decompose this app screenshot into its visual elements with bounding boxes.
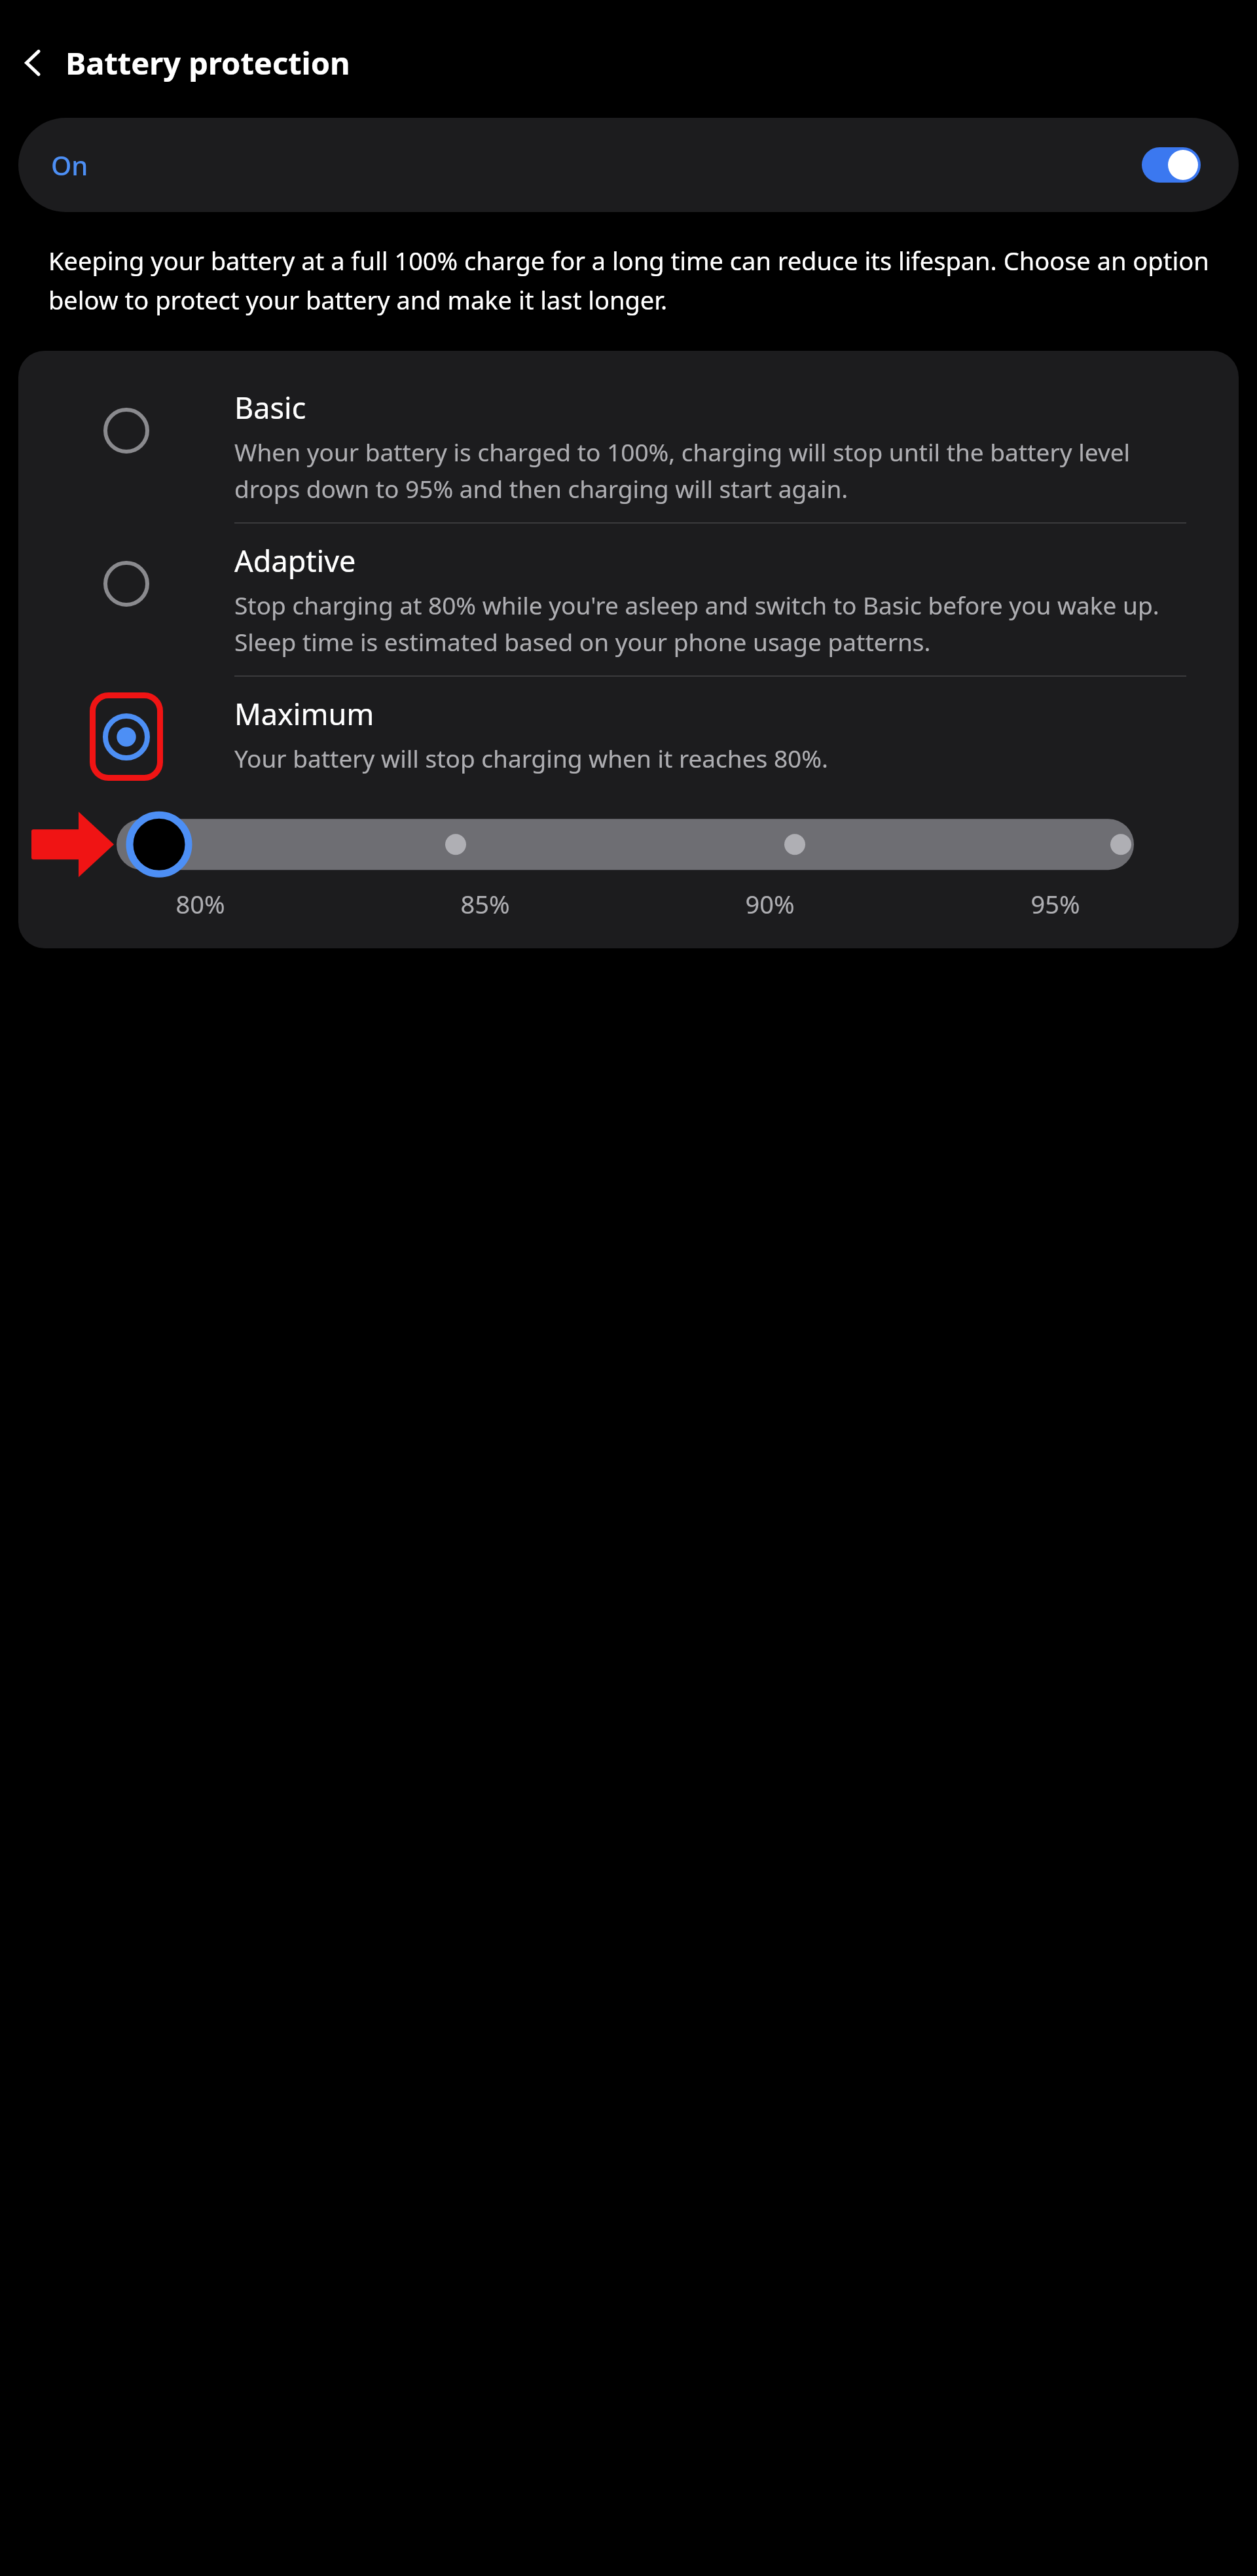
staticText: 85% <box>460 887 510 921</box>
button[interactable]: Maximum <box>18 677 1239 796</box>
staticText: On <box>51 147 88 183</box>
staticText: Basic <box>234 387 306 427</box>
staticText: Your battery will stop charging when it … <box>234 742 828 774</box>
staticText: 95% <box>1030 887 1080 921</box>
button[interactable]: Basic <box>18 370 1239 522</box>
button[interactable]: Battery protection toggle <box>1142 147 1201 183</box>
staticText: 80% <box>175 887 225 921</box>
button[interactable]: Back <box>13 42 55 84</box>
staticText: Keeping your battery at a full 100% char… <box>48 243 1220 317</box>
staticText: Maximum <box>234 694 374 734</box>
button[interactable]: Adaptive <box>18 524 1239 675</box>
button[interactable]: Charge limit slider <box>18 807 1239 879</box>
staticText: Adaptive <box>234 541 356 581</box>
staticText: 90% <box>745 887 795 921</box>
staticText: When your battery is charged to 100%, ch… <box>234 435 1190 505</box>
button[interactable]: On <box>18 118 1239 212</box>
staticText: Stop charging at 80% while you're asleep… <box>234 588 1190 658</box>
staticText: Battery protection <box>65 42 350 84</box>
